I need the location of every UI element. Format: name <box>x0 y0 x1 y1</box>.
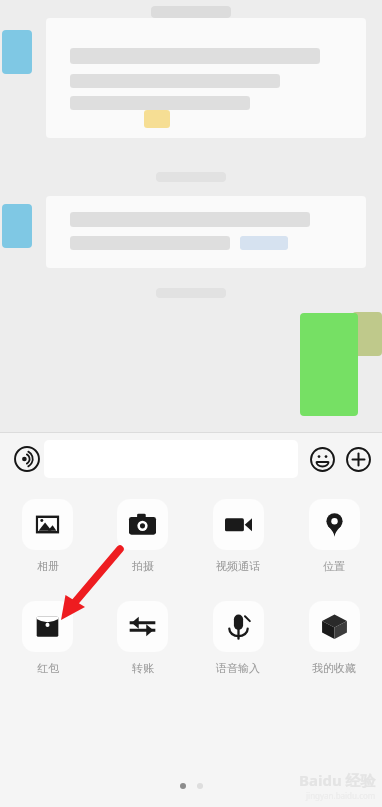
button[interactable]: Red packet <box>0 601 95 675</box>
staticText: 相册 <box>37 559 59 573</box>
staticText: Baidu 经验 <box>299 770 376 790</box>
button[interactable]: Favorites <box>286 601 382 675</box>
staticText: 我的收藏 <box>312 661 356 675</box>
staticText: 拍摄 <box>132 559 154 573</box>
staticText: jingyan.baidu.com <box>306 790 376 801</box>
button[interactable]: Transfer <box>95 601 190 675</box>
button[interactable]: Emoji <box>304 441 340 477</box>
button[interactable]: Album <box>0 499 95 573</box>
button[interactable]: More <box>340 441 376 477</box>
button[interactable]: Video call <box>190 499 286 573</box>
button[interactable]: Location <box>286 499 382 573</box>
button[interactable]: Camera <box>95 499 190 573</box>
staticText: 视频通话 <box>216 559 260 573</box>
staticText: 语音输入 <box>216 661 260 675</box>
staticText: 位置 <box>323 559 345 573</box>
staticText: 红包 <box>37 661 59 675</box>
staticText: 转账 <box>132 661 154 675</box>
button[interactable]: Voice input <box>190 601 286 675</box>
button[interactable]: Voice input <box>9 441 45 477</box>
